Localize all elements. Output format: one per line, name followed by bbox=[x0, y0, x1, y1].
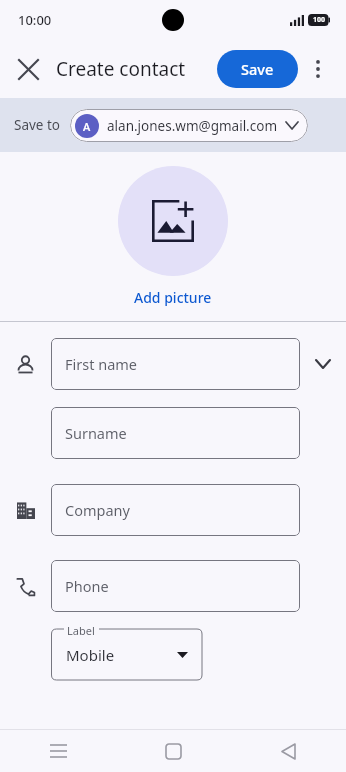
staticText: Phone bbox=[65, 576, 109, 596]
button[interactable]: A bbox=[70, 109, 308, 142]
button[interactable]: Back bbox=[231, 730, 346, 772]
button[interactable]: Home bbox=[116, 730, 231, 772]
button[interactable]: Close bbox=[8, 49, 48, 89]
button[interactable]: Add picture bbox=[128, 286, 218, 309]
staticText: A bbox=[83, 119, 91, 134]
button[interactable]: First name bbox=[51, 338, 300, 390]
staticText: Label bbox=[67, 623, 95, 638]
staticText: Save bbox=[241, 59, 274, 79]
button[interactable]: Recent apps bbox=[0, 730, 116, 772]
button[interactable]: Add picture bbox=[118, 166, 228, 276]
button[interactable]: Company bbox=[51, 484, 300, 536]
staticText: alan.jones.wm@gmail.com bbox=[107, 117, 278, 135]
staticText: 10:00 bbox=[18, 11, 52, 29]
button[interactable]: Surname bbox=[51, 407, 300, 459]
staticText: Surname bbox=[65, 423, 127, 443]
staticText: Save to bbox=[14, 116, 61, 134]
button[interactable]: Mobile bbox=[51, 621, 203, 681]
button[interactable]: More options bbox=[298, 49, 338, 89]
staticText: First name bbox=[65, 354, 138, 374]
staticText: Company bbox=[65, 500, 130, 520]
staticText: Add picture bbox=[134, 288, 212, 307]
button[interactable]: Save bbox=[217, 50, 298, 88]
button[interactable]: Expand name fields bbox=[300, 341, 346, 387]
staticText: Create contact bbox=[56, 56, 186, 82]
staticText: Mobile bbox=[66, 645, 115, 665]
staticText: 100 bbox=[313, 15, 326, 25]
button[interactable]: Phone bbox=[51, 560, 300, 612]
